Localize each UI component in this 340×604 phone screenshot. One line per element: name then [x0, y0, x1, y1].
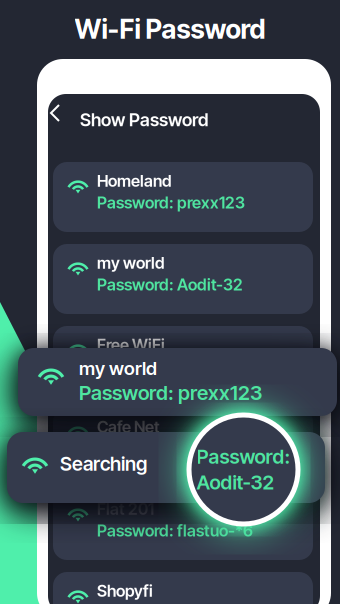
staticText: Flat 201 [97, 499, 154, 519]
staticText: Homeland [97, 171, 172, 191]
staticText: Cafe Net [97, 417, 160, 437]
button[interactable]: Cafe Net [53, 408, 313, 478]
button[interactable]: Searching [7, 432, 325, 503]
staticText: Searching [60, 452, 147, 475]
staticText: Password: prexx123 [79, 381, 262, 405]
staticText: my world [79, 357, 157, 380]
staticText: Password: Aodit-32 [97, 275, 243, 294]
staticText: Free WiFi [97, 335, 165, 355]
staticText: Password: zenn-0091 [97, 357, 255, 376]
staticText: Aodit-32 [196, 470, 274, 494]
button[interactable]: Shopyfi [53, 572, 313, 604]
button[interactable]: my world [53, 244, 313, 314]
staticText: Show Password [80, 109, 208, 131]
button[interactable]: my world [18, 348, 337, 416]
button[interactable]: Free WiFi [53, 326, 313, 396]
staticText: Password: latte-882 [97, 439, 247, 458]
staticText: Password: prexx123 [97, 193, 245, 212]
button[interactable]: Back [48, 102, 82, 142]
staticText: Password: [196, 445, 290, 468]
staticText: my world [97, 253, 165, 273]
button[interactable]: Flat 201 [53, 490, 313, 560]
staticText: Wi-Fi Password [74, 13, 265, 45]
staticText: Shopyfi [97, 581, 153, 601]
staticText: Password: flastuo-*6 [97, 521, 253, 540]
button[interactable]: Homeland [53, 162, 313, 232]
